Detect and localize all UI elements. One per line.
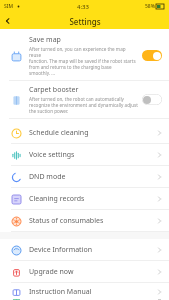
staticText: Instruction Manual [29,287,158,297]
staticText: After turned on, the robot can automatic… [29,96,138,114]
button[interactable]: Voice settings [0,144,169,165]
button[interactable]: Save map [0,31,169,80]
button[interactable]: Toggle off [142,94,162,105]
button[interactable]: Upgrade now [0,261,169,282]
staticText: Schedule cleaning [29,128,158,138]
button[interactable]: Schedule cleaning [0,122,169,143]
staticText: Save map [29,35,61,45]
staticText: DND mode [29,172,158,182]
staticText: Upgrade now [29,267,158,277]
staticText: Device Information [29,245,158,255]
staticText: 4:33 [77,3,89,11]
staticText: Status of consumables [29,216,158,226]
staticText: SIM [4,3,14,10]
button[interactable]: Cleaning records [0,188,169,209]
button[interactable]: Carpet booster [0,81,169,118]
staticText: Voice settings [29,150,158,160]
staticText: Settings [69,16,101,27]
staticText: Carpet booster [29,85,79,95]
staticText: After turned on, you can experience the … [29,46,138,76]
button[interactable]: Back [0,13,16,29]
staticText: Cleaning records [29,194,158,204]
button[interactable]: DND mode [0,166,169,187]
button[interactable]: Toggle on [142,50,162,61]
staticText: 58% [145,3,155,10]
button[interactable]: Device Information [0,239,169,260]
button[interactable]: Status of consumables [0,210,169,231]
button[interactable]: Instruction Manual [0,283,169,300]
